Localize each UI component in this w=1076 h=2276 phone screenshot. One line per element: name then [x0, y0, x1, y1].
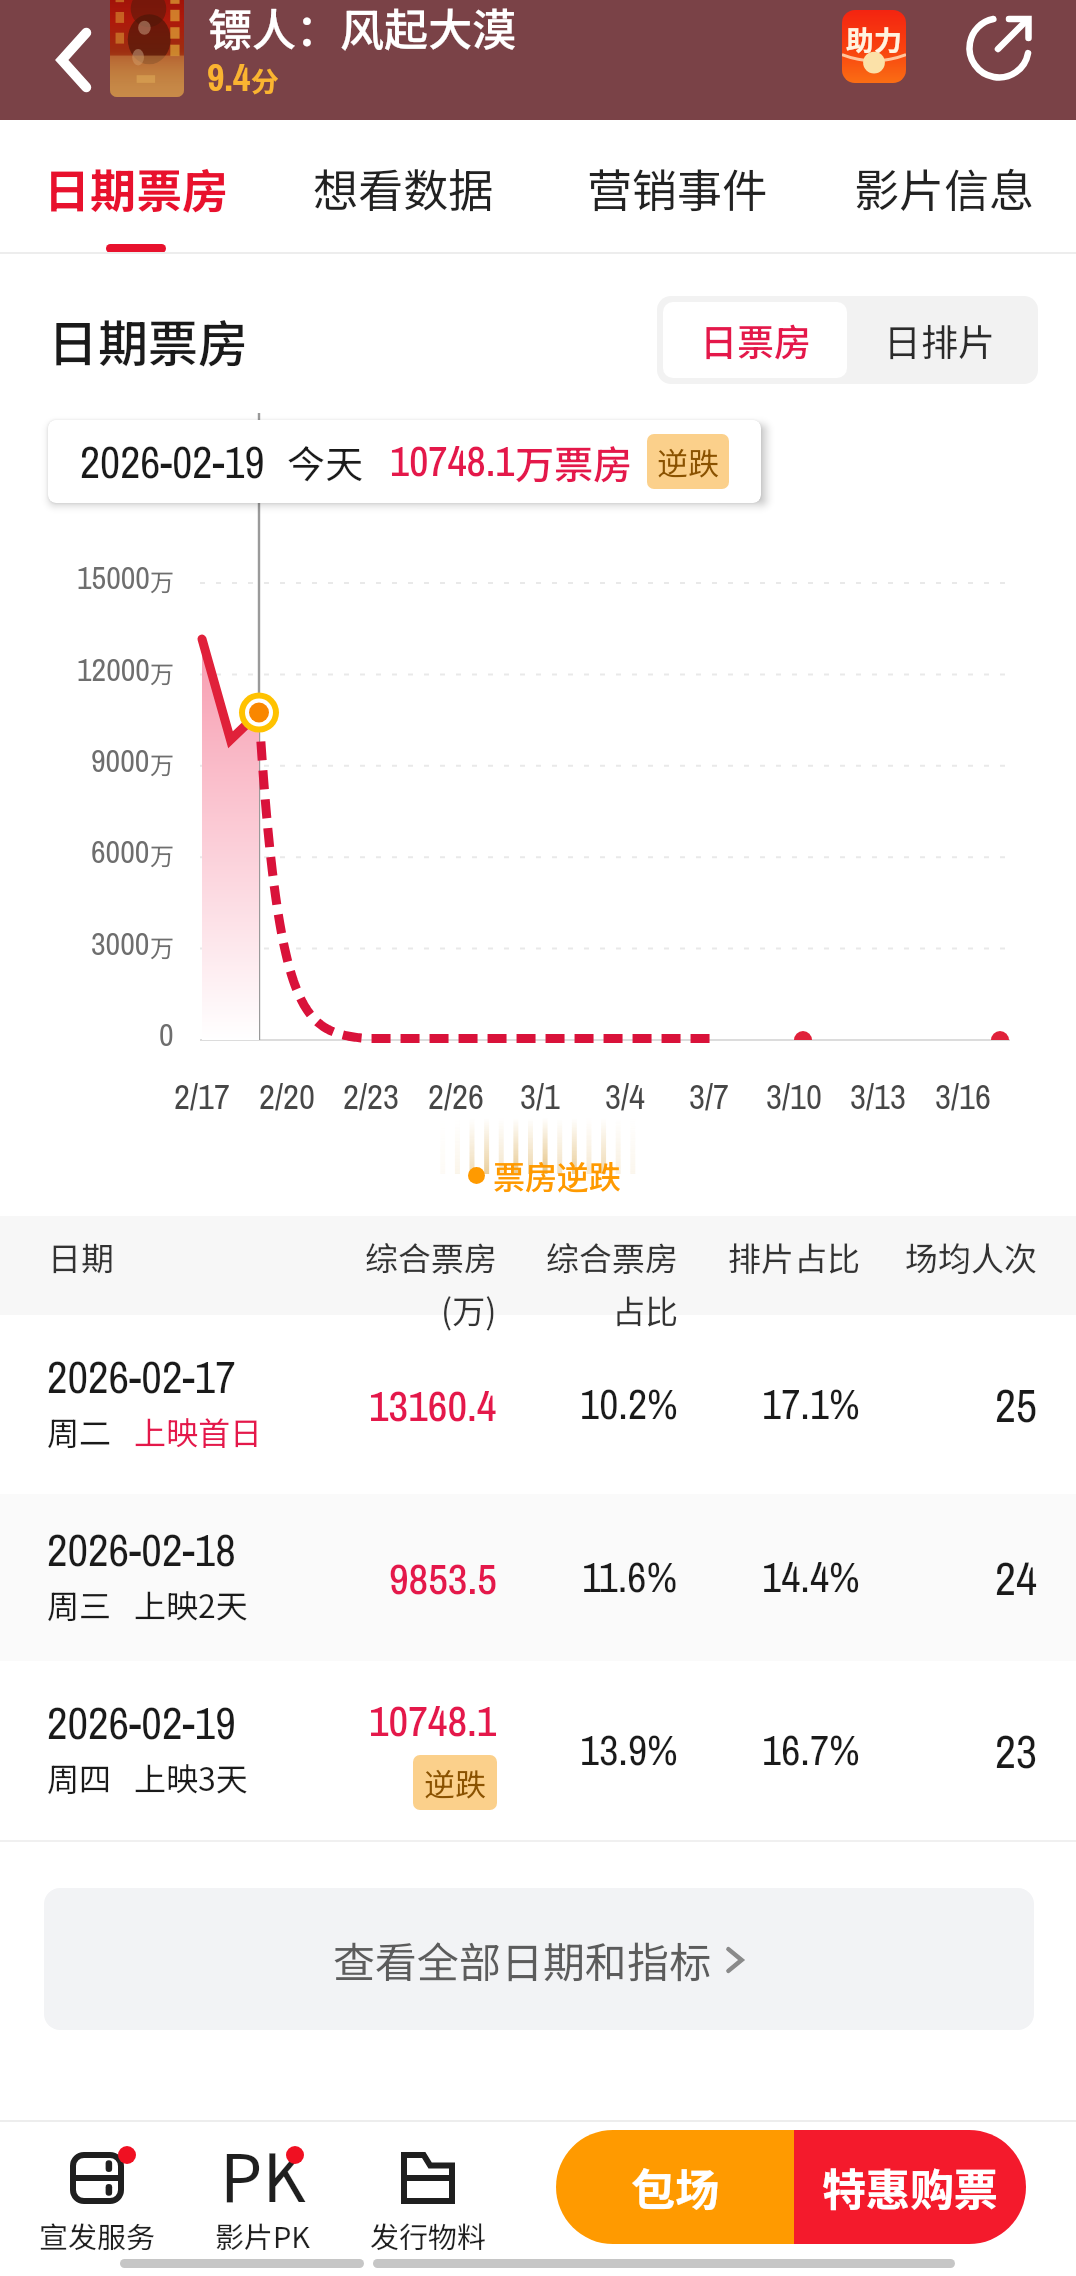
- staticText: 上映3天: [134, 1754, 248, 1800]
- staticText: 13160.4: [369, 1376, 497, 1434]
- staticText: 万: [150, 746, 174, 781]
- staticText: 0: [159, 1013, 174, 1056]
- staticText: 16.7%: [762, 1722, 860, 1779]
- staticText: 12000: [77, 648, 150, 691]
- button[interactable]: 营销事件: [543, 120, 811, 254]
- staticText: 包场: [631, 2155, 719, 2219]
- staticText: 日期: [48, 1233, 114, 1281]
- staticText: 2/17: [174, 1073, 230, 1120]
- staticText: 2/20: [259, 1073, 315, 1120]
- staticText: 占比: [612, 1286, 678, 1334]
- staticText: 2/26: [428, 1073, 484, 1120]
- staticText: 14.4%: [762, 1549, 860, 1606]
- staticText: 逆跌: [424, 1760, 486, 1805]
- staticText: 2026-02-17: [47, 1346, 236, 1407]
- staticText: 9853.5: [389, 1549, 497, 1607]
- staticText: 3/16: [935, 1073, 991, 1120]
- staticText: 23: [995, 1720, 1037, 1782]
- staticText: 发行物料: [370, 2214, 487, 2256]
- staticText: 万: [150, 563, 174, 598]
- staticText: 影片PK: [215, 2214, 311, 2256]
- staticText: 今天: [287, 434, 364, 489]
- staticText: 9000: [91, 739, 150, 782]
- button[interactable]: PK: [178, 2122, 348, 2252]
- staticText: 万: [150, 655, 174, 690]
- staticText: 排片占比: [728, 1233, 860, 1281]
- button[interactable]: 2026-02-18: [0, 1494, 1076, 1661]
- staticText: 9.4: [207, 52, 251, 103]
- staticText: 3000: [91, 922, 150, 965]
- staticText: 综合票房: [546, 1233, 678, 1281]
- button[interactable]: 特惠购票: [794, 2130, 1026, 2244]
- staticText: 24: [995, 1547, 1037, 1609]
- button[interactable]: 2026-02-17: [0, 1315, 1076, 1494]
- staticText: 15000: [77, 556, 150, 599]
- button[interactable]: 日票房: [663, 302, 847, 378]
- button[interactable]: 想看数据: [269, 120, 537, 254]
- staticText: 25: [995, 1374, 1037, 1436]
- staticText: 影片信息: [854, 155, 1035, 220]
- button[interactable]: Back: [26, 0, 122, 120]
- staticText: 日期票房: [48, 304, 248, 376]
- button[interactable]: 日期票房: [2, 120, 270, 254]
- staticText: 上映首日: [134, 1408, 263, 1454]
- staticText: PK: [220, 2124, 306, 2221]
- staticText: 想看数据: [313, 155, 494, 220]
- staticText: 镖人：风起大漠: [208, 0, 516, 59]
- staticText: 分: [251, 60, 280, 101]
- staticText: 3/1: [520, 1073, 560, 1120]
- button[interactable]: 查看全部日期和指标: [44, 1888, 1034, 2030]
- staticText: 13.9%: [580, 1722, 678, 1779]
- button[interactable]: Share: [951, 0, 1047, 96]
- staticText: 日期票房: [44, 155, 228, 222]
- staticText: 宣发服务: [39, 2214, 156, 2256]
- staticText: 10748.1: [390, 433, 515, 490]
- staticText: 逆跌: [657, 439, 719, 484]
- staticText: 万: [150, 929, 174, 964]
- staticText: 3/7: [689, 1073, 729, 1120]
- staticText: 场均人次: [905, 1233, 1037, 1281]
- staticText: 3/4: [605, 1073, 645, 1120]
- button[interactable]: 日排片: [847, 302, 1032, 378]
- button[interactable]: 宣发服务: [12, 2122, 182, 2252]
- button[interactable]: 影片信息: [810, 120, 1076, 254]
- staticText: 上映2天: [134, 1581, 248, 1627]
- staticText: (万): [441, 1286, 497, 1334]
- staticText: 2/23: [343, 1073, 399, 1120]
- button[interactable]: 发行物料: [343, 2122, 513, 2252]
- staticText: 11.6%: [582, 1549, 678, 1606]
- staticText: 查看全部日期和指标: [333, 1929, 712, 1990]
- staticText: 万票房: [515, 434, 633, 490]
- button[interactable]: 2026-02-19: [0, 1661, 1076, 1840]
- staticText: 17.1%: [762, 1376, 860, 1433]
- staticText: 特惠购票: [822, 2155, 998, 2219]
- staticText: 助力: [846, 19, 903, 60]
- staticText: 日票房: [700, 313, 811, 367]
- staticText: 日排片: [884, 313, 995, 367]
- staticText: 6000: [91, 830, 150, 873]
- button[interactable]: 助力: [842, 10, 906, 83]
- staticText: 营销事件: [587, 155, 768, 220]
- staticText: 周二: [47, 1408, 112, 1454]
- staticText: 3/13: [850, 1073, 906, 1120]
- staticText: 综合票房: [365, 1233, 497, 1281]
- staticText: 2026-02-18: [47, 1519, 236, 1580]
- staticText: 10.2%: [580, 1376, 678, 1433]
- staticText: 票房逆跌: [493, 1152, 622, 1198]
- staticText: 2026-02-19: [80, 432, 265, 491]
- button[interactable]: 包场: [556, 2130, 794, 2244]
- staticText: 万: [150, 837, 174, 872]
- staticText: 2026-02-19: [47, 1692, 236, 1753]
- staticText: 周四: [47, 1754, 112, 1800]
- staticText: 3/10: [766, 1073, 822, 1120]
- staticText: 10748.1: [369, 1691, 497, 1749]
- staticText: 周三: [47, 1581, 112, 1627]
